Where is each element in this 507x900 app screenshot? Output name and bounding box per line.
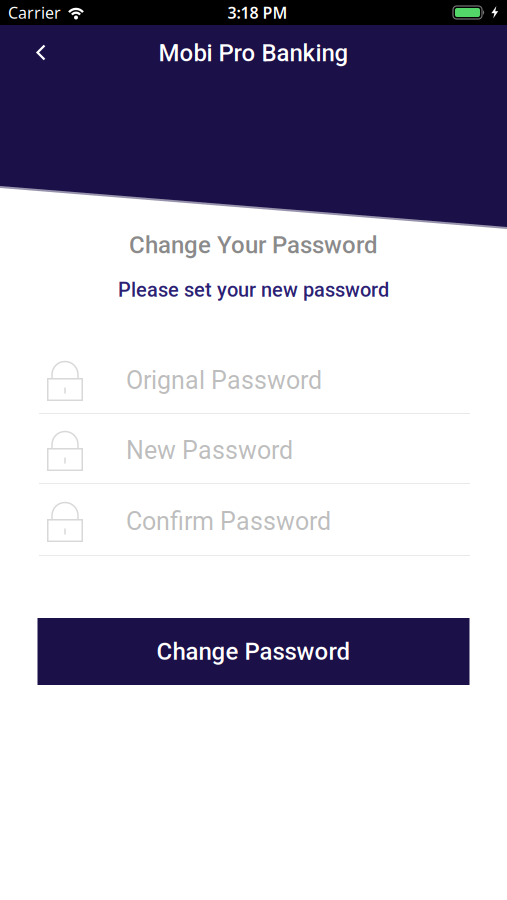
- button[interactable]: Confirm Password: [0, 484, 507, 555]
- button[interactable]: Orignal Password: [0, 344, 507, 413]
- staticText: Confirm Password: [126, 507, 331, 536]
- staticText: Change Password: [156, 637, 350, 665]
- staticText: Please set your new password: [118, 278, 389, 302]
- button[interactable]: Change Password: [37, 618, 469, 685]
- staticText: Mobi Pro Banking: [158, 39, 348, 67]
- staticText: Change Your Password: [129, 231, 378, 259]
- staticText: Orignal Password: [126, 366, 322, 395]
- staticText: New Password: [126, 436, 293, 465]
- button[interactable]: New Password: [0, 414, 507, 483]
- staticText: 3:18 PM: [227, 2, 287, 23]
- button[interactable]: Back: [0, 35, 68, 71]
- staticText: Carrier: [8, 2, 61, 23]
